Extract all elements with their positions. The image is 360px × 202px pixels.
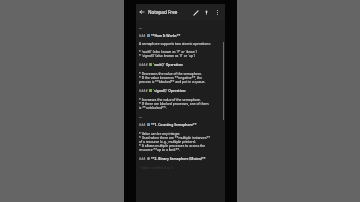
staticText: resource **up to a limit**. (139, 147, 181, 151)
staticText: --- (139, 114, 143, 118)
staticText: Notepad Free (148, 9, 178, 15)
staticText: * Used when there are **multiple instanc… (139, 135, 211, 139)
staticText: ### (139, 122, 146, 126)
staticText: A semaphore supports two atomic operatio… (139, 41, 211, 45)
staticText: **1. Counting Semaphore** (151, 122, 197, 126)
button[interactable]: Back (136, 6, 148, 18)
staticText: * Value can be any integer. (139, 131, 181, 135)
staticText: `wait()` Operation: (153, 62, 184, 66)
button[interactable]: --- (136, 20, 225, 202)
button[interactable]: Edit (190, 7, 201, 18)
staticText: * `signal()` (also known as `V` or `up`) (139, 53, 195, 57)
staticText: #### (139, 62, 148, 66)
staticText: of a resource (e.g., multiple printers). (139, 139, 197, 143)
staticText: * If there are blocked processes, one of… (139, 101, 209, 105)
button[interactable]: Voice note (201, 7, 212, 18)
staticText: **How It Works** (151, 33, 181, 37)
staticText: * Increases the value of the semaphore. (139, 97, 201, 101)
staticText: process is **blocked** and put in a queu… (139, 79, 206, 83)
staticText: * Value is either 0 or 1. (139, 165, 175, 169)
staticText: ### (139, 156, 146, 160)
staticText: ### (139, 33, 146, 37)
staticText: --- (139, 25, 143, 29)
staticText: * `wait()` (also known as `P` or `down`) (139, 49, 197, 53)
staticText: is **unblocked**. (139, 105, 167, 109)
staticText: `signal()` Operation: (153, 88, 186, 92)
staticText: **2. Binary Semaphore (Mutex)** (151, 156, 206, 160)
staticText: * Decreases the value of the semaphore. (139, 71, 202, 75)
staticText: * It allows multiple processes to access… (139, 143, 206, 147)
button[interactable]: More options (212, 7, 223, 18)
staticText: #### (139, 88, 148, 92)
staticText: * If the value becomes **negative**, the (139, 75, 203, 79)
